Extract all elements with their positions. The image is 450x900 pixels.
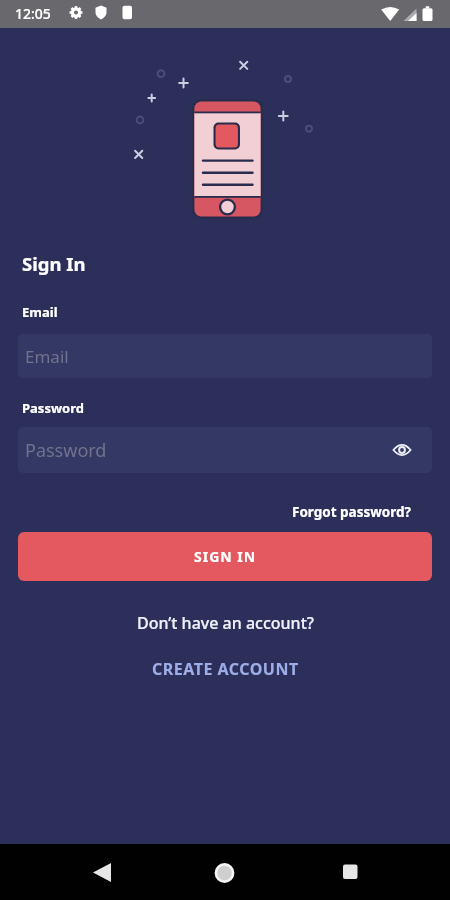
staticText: Don’t have an account? [137, 612, 314, 634]
staticText: Email [25, 345, 69, 368]
button[interactable] [150, 844, 300, 900]
staticText: Email [22, 303, 58, 321]
staticText: 12:05 [15, 4, 51, 23]
button[interactable]: Password [18, 427, 432, 473]
button[interactable] [300, 844, 450, 900]
staticText: Password [25, 438, 107, 463]
button[interactable]: Email [18, 334, 432, 378]
button[interactable]: SIGN IN [18, 532, 432, 581]
button[interactable]: CREATE ACCOUNT [152, 658, 299, 680]
button[interactable]: Forgot password? [292, 503, 411, 521]
button[interactable] [390, 438, 414, 462]
staticText: Password [22, 399, 84, 417]
staticText: Sign In [22, 251, 86, 276]
button[interactable] [0, 844, 150, 900]
staticText: SIGN IN [194, 547, 257, 566]
